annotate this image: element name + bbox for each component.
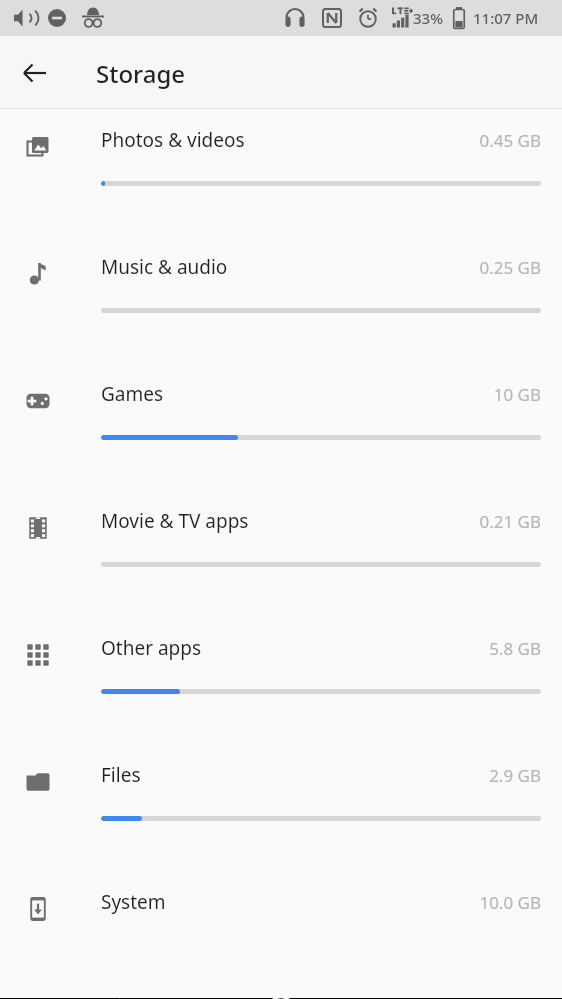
staticText: 33% — [413, 8, 443, 28]
staticText: Storage — [96, 57, 186, 90]
staticText: 2.9 GB — [341, 764, 541, 787]
staticText: Files — [101, 762, 141, 788]
button[interactable]: System — [0, 871, 562, 998]
staticText: 10 GB — [341, 383, 541, 406]
button[interactable]: Files — [0, 744, 562, 871]
staticText: Movie & TV apps — [101, 508, 249, 534]
staticText: 0.45 GB — [341, 129, 541, 152]
button[interactable]: Music & audio — [0, 236, 562, 363]
button[interactable]: Back — [14, 52, 56, 94]
staticText: Music & audio — [101, 254, 228, 280]
staticText: Games — [101, 381, 164, 407]
staticText: System — [101, 889, 166, 915]
staticText: 5.8 GB — [341, 637, 541, 660]
staticText: Photos & videos — [101, 127, 245, 153]
staticText: 0.21 GB — [341, 510, 541, 533]
staticText: 0.25 GB — [341, 256, 541, 279]
button[interactable]: Movie & TV apps — [0, 490, 562, 617]
staticText: 10.0 GB — [341, 891, 541, 914]
staticText: 11:07 PM — [473, 8, 539, 28]
button[interactable]: Other apps — [0, 617, 562, 744]
button[interactable]: Games — [0, 363, 562, 490]
button[interactable]: Photos & videos — [0, 109, 562, 236]
staticText: Other apps — [101, 635, 202, 661]
